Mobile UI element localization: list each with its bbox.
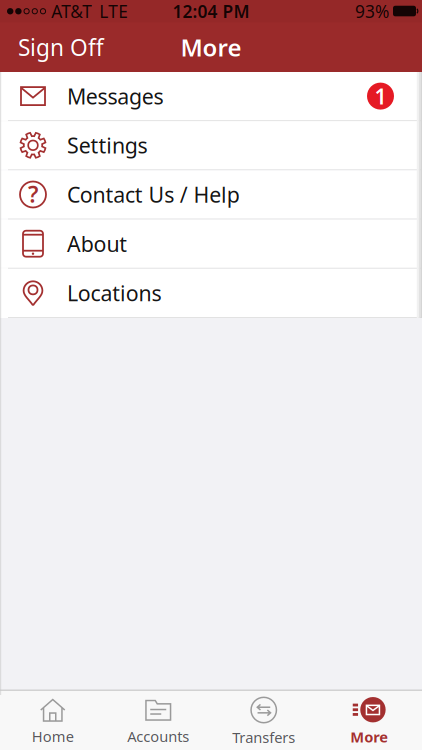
- button[interactable]: ?: [0, 170, 422, 219]
- button[interactable]: Sign Off: [0, 22, 104, 72]
- staticText: More: [350, 727, 388, 746]
- staticText: About: [67, 229, 127, 258]
- staticText: ?: [28, 179, 38, 209]
- staticText: Home: [32, 726, 74, 746]
- button[interactable]: About: [0, 220, 422, 268]
- button[interactable]: Locations: [0, 269, 422, 317]
- staticText: More: [180, 31, 241, 63]
- staticText: Locations: [67, 279, 161, 307]
- staticText: Settings: [67, 131, 148, 159]
- button[interactable]: Transfers: [211, 696, 316, 747]
- staticText: LTE: [99, 0, 128, 23]
- button[interactable]: Messages: [0, 72, 422, 120]
- staticText: 12:04 PM: [172, 0, 249, 23]
- button[interactable]: More: [316, 697, 422, 746]
- staticText: Sign Off: [18, 32, 104, 62]
- button[interactable]: Settings: [0, 121, 422, 169]
- staticText: 1: [374, 82, 386, 110]
- button[interactable]: Home: [0, 697, 105, 746]
- staticText: Accounts: [127, 726, 189, 746]
- staticText: Messages: [67, 82, 164, 110]
- staticText: AT&T: [51, 0, 92, 23]
- button[interactable]: Accounts: [105, 697, 211, 746]
- staticText: Contact Us / Help: [67, 180, 240, 209]
- staticText: 93%: [355, 0, 389, 23]
- staticText: Transfers: [232, 727, 295, 747]
